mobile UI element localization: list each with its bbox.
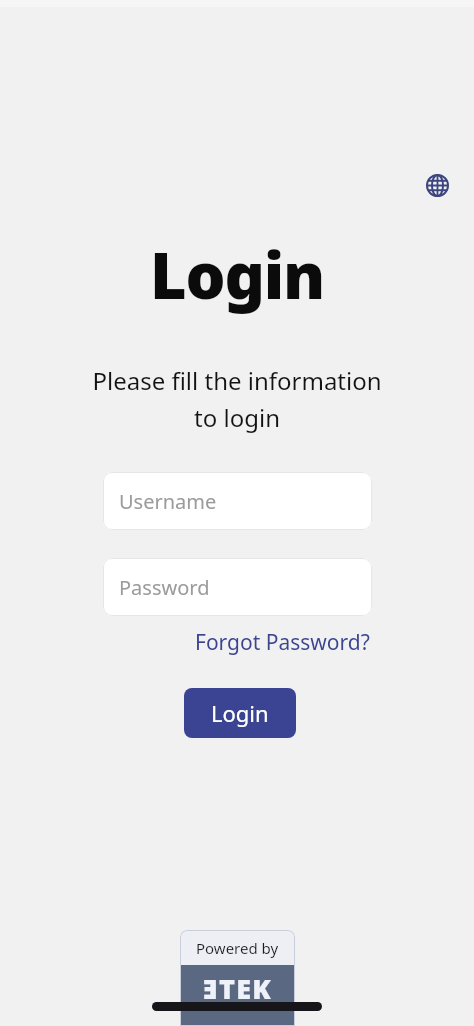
button[interactable]: Password — [103, 558, 372, 616]
staticText: Please fill the information to login — [92, 364, 382, 434]
staticText: Login — [211, 698, 269, 728]
button[interactable]: Change language — [414, 162, 460, 208]
staticText: Username — [119, 488, 217, 515]
staticText: Forgot Password? — [195, 628, 370, 657]
staticText: ƎTEK — [203, 970, 272, 1007]
staticText: Powered by — [196, 938, 279, 958]
staticText: Login — [150, 232, 324, 318]
button[interactable]: Forgot Password? — [193, 626, 372, 659]
button[interactable]: Login — [184, 688, 296, 738]
staticText: Password — [119, 574, 210, 601]
button[interactable]: Username — [103, 472, 372, 530]
